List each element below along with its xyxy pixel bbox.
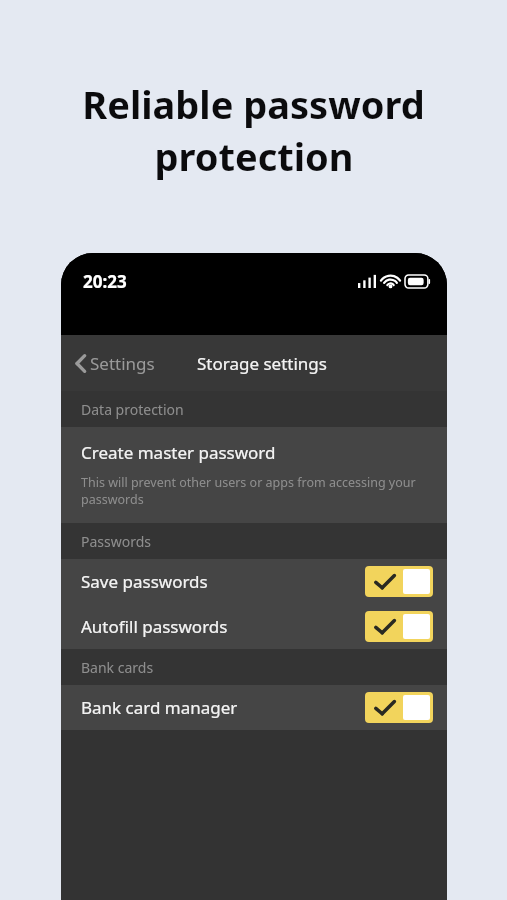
- button[interactable]: Settings: [61, 346, 165, 381]
- button[interactable]: Toggle on: [365, 692, 433, 723]
- staticText: Create master password: [81, 441, 276, 464]
- staticText: Save passwords: [81, 570, 365, 593]
- button[interactable]: Bank card manager: [61, 685, 447, 730]
- staticText: 20:23: [83, 270, 127, 293]
- staticText: Passwords: [81, 532, 152, 551]
- staticText: This will prevent other users or apps fr…: [81, 474, 427, 507]
- staticText: Bank cards: [81, 658, 154, 677]
- button[interactable]: Autofill passwords: [61, 604, 447, 649]
- button[interactable]: Create master password: [61, 427, 447, 523]
- staticText: protection: [154, 130, 354, 182]
- staticText: Data protection: [81, 400, 184, 419]
- staticText: Autofill passwords: [81, 615, 365, 638]
- staticText: Storage settings: [197, 352, 327, 375]
- staticText: Settings: [90, 352, 155, 375]
- button[interactable]: Toggle on: [365, 611, 433, 642]
- staticText: Bank card manager: [81, 696, 365, 719]
- button[interactable]: Save passwords: [61, 559, 447, 604]
- button[interactable]: Toggle on: [365, 566, 433, 597]
- staticText: Reliable password: [82, 78, 425, 130]
